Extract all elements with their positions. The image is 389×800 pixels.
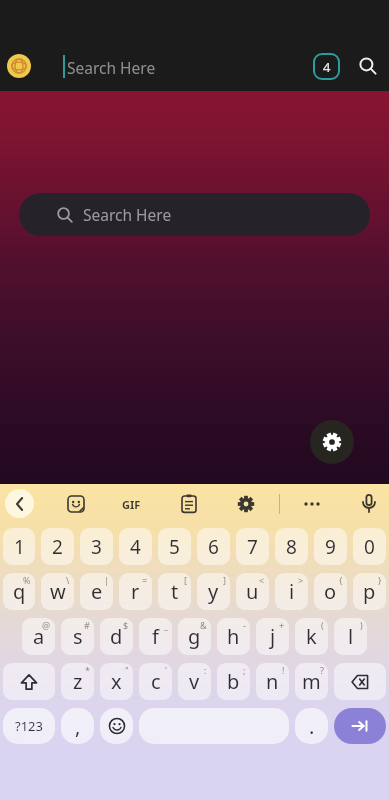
staticText: : <box>204 664 207 676</box>
staticText: @ <box>42 619 51 631</box>
staticText: 7 <box>247 534 258 560</box>
button[interactable]: l <box>334 618 367 655</box>
staticText: g <box>188 623 201 650</box>
button[interactable]: m <box>295 663 328 700</box>
staticText: t <box>171 578 179 605</box>
staticText: . <box>309 713 315 740</box>
staticText: } <box>378 574 382 586</box>
staticText: 4 <box>323 58 331 76</box>
button[interactable]: 0 <box>353 528 386 565</box>
staticText: & <box>200 619 207 631</box>
staticText: x <box>111 668 122 695</box>
staticText: ? <box>320 664 324 676</box>
staticText: > <box>298 574 304 586</box>
staticText: , <box>75 713 81 740</box>
button[interactable]: c <box>139 663 172 700</box>
staticText: ( <box>321 619 324 631</box>
staticText: 2 <box>52 534 63 560</box>
staticText: 3 <box>91 534 102 560</box>
button[interactable]: GIF <box>113 492 149 516</box>
staticText: ; <box>243 664 246 676</box>
button[interactable] <box>310 420 354 464</box>
staticText: s <box>73 623 83 650</box>
button[interactable] <box>334 663 386 700</box>
staticText: 0 <box>364 534 375 560</box>
button[interactable]: v <box>178 663 211 700</box>
staticText: a <box>33 623 45 650</box>
button[interactable]: Search Here <box>19 193 370 236</box>
button[interactable]: t <box>158 573 191 610</box>
button[interactable]: q <box>3 573 35 610</box>
button[interactable] <box>139 708 289 744</box>
button[interactable]: 2 <box>41 528 74 565</box>
staticText: 4 <box>130 534 141 560</box>
button[interactable]: u <box>236 573 269 610</box>
button[interactable]: 1 <box>3 528 35 565</box>
button[interactable]: ?123 <box>3 708 55 744</box>
button[interactable]: 7 <box>236 528 269 565</box>
button[interactable]: , <box>61 708 94 744</box>
button[interactable]: e <box>80 573 113 610</box>
button[interactable]: p <box>353 573 386 610</box>
button[interactable]: h <box>217 618 250 655</box>
staticText: v <box>189 668 200 695</box>
button[interactable] <box>7 54 31 78</box>
staticText: ?123 <box>15 717 43 735</box>
staticText: d <box>110 623 123 650</box>
staticText: * <box>85 664 90 676</box>
button[interactable] <box>100 708 133 744</box>
staticText: l <box>348 623 354 650</box>
button[interactable]: o <box>314 573 347 610</box>
staticText: = <box>142 574 148 586</box>
staticText: " <box>125 664 129 676</box>
button[interactable]: s <box>61 618 94 655</box>
button[interactable]: i <box>275 573 308 610</box>
staticText: z <box>73 668 83 695</box>
staticText: h <box>227 623 240 650</box>
button[interactable] <box>234 492 258 516</box>
button[interactable] <box>3 663 55 700</box>
button[interactable]: b <box>217 663 250 700</box>
button[interactable]: x <box>100 663 133 700</box>
button[interactable]: 8 <box>275 528 308 565</box>
button[interactable]: . <box>295 708 328 744</box>
button[interactable]: a <box>22 618 55 655</box>
staticText: p <box>363 578 376 605</box>
staticText: b <box>227 668 240 695</box>
button[interactable] <box>64 492 88 516</box>
button[interactable]: 4 <box>313 53 340 80</box>
staticText: { <box>339 574 343 586</box>
button[interactable]: d <box>100 618 133 655</box>
button[interactable]: j <box>256 618 289 655</box>
button[interactable]: z <box>61 663 94 700</box>
button[interactable]: 4 <box>119 528 152 565</box>
button[interactable] <box>355 53 381 79</box>
button[interactable]: 3 <box>80 528 113 565</box>
staticText: o <box>324 578 337 605</box>
button[interactable] <box>300 492 324 516</box>
staticText: # <box>84 619 90 631</box>
button[interactable]: 6 <box>197 528 230 565</box>
button[interactable] <box>5 489 34 518</box>
button[interactable]: 5 <box>158 528 191 565</box>
button[interactable] <box>357 492 381 516</box>
staticText: | <box>104 574 109 586</box>
button[interactable]: w <box>41 573 74 610</box>
button[interactable]: 9 <box>314 528 347 565</box>
button[interactable]: k <box>295 618 328 655</box>
staticText: Search Here <box>83 204 172 225</box>
staticText: ) <box>360 619 363 631</box>
button[interactable] <box>334 708 386 744</box>
staticText: m <box>302 668 321 695</box>
button[interactable]: r <box>119 573 152 610</box>
button[interactable]: y <box>197 573 230 610</box>
staticText: k <box>306 623 317 650</box>
button[interactable]: g <box>178 618 211 655</box>
button[interactable] <box>177 492 201 516</box>
button[interactable]: f <box>139 618 172 655</box>
button[interactable]: n <box>256 663 289 700</box>
staticText: Search Here <box>67 57 156 78</box>
staticText: q <box>13 578 26 605</box>
staticText: 8 <box>286 534 297 560</box>
staticText: % <box>23 574 31 586</box>
